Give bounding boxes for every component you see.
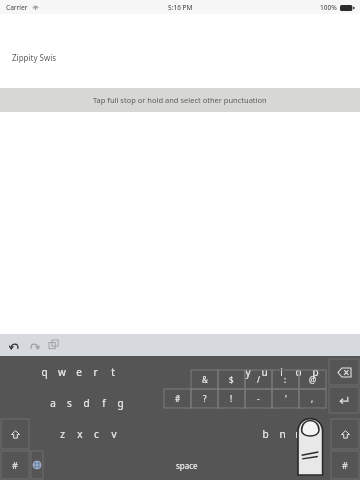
staticText: : [284,374,287,385]
button[interactable]: e [70,359,87,385]
button[interactable]: f [95,390,112,416]
staticText: c [94,427,99,441]
staticText: & [202,374,208,385]
button[interactable]: # [164,389,191,408]
staticText: u [261,365,268,379]
button[interactable]: space [45,451,329,479]
staticText: Carrier [6,3,28,12]
staticText: y [245,365,251,379]
staticText: $ [229,374,234,385]
button[interactable]: y [239,359,256,385]
button[interactable]: Symbols [1,451,29,479]
button[interactable]: b [257,421,274,447]
button[interactable]: w [53,359,70,385]
staticText: p [312,365,319,379]
button[interactable]: Change keyboard [31,451,43,479]
staticText: f [102,396,106,410]
staticText: t [111,365,115,379]
button[interactable]: a [44,390,61,416]
staticText: 5:16 PM [168,3,193,12]
button[interactable]: , [299,389,326,408]
button[interactable]: i [273,359,290,385]
button[interactable]: u [256,359,273,385]
staticText: b [262,427,269,441]
button[interactable]: n [274,421,291,447]
button[interactable]: v [105,421,122,447]
staticText: / [257,374,260,385]
button[interactable]: ! [218,389,245,408]
staticText: n [279,427,286,441]
staticText: ' [285,393,287,404]
button[interactable]: x [71,421,88,447]
button[interactable]: z [54,421,71,447]
staticText: d [83,396,90,410]
staticText: , [311,393,314,404]
button[interactable]: Redo [24,335,44,355]
button[interactable]: g [112,390,129,416]
staticText: space [176,460,198,471]
button[interactable]: ? [191,389,218,408]
button[interactable]: s [61,390,78,416]
staticText: ? [203,393,207,404]
staticText: 100% [320,3,337,12]
button[interactable]: m [291,421,308,447]
button[interactable]: Undo [4,335,24,355]
button[interactable]: : [272,370,299,389]
staticText: - [257,393,260,404]
button[interactable]: @ [299,370,326,389]
button[interactable]: o [290,359,307,385]
staticText: e [76,365,82,379]
staticText: @ [309,374,317,385]
button[interactable]: Shift [331,419,359,449]
button[interactable]: Shift [1,419,29,449]
button[interactable]: q [36,359,53,385]
staticText: m [295,427,305,441]
button[interactable]: ' [272,389,299,408]
staticText: # [12,459,18,471]
button[interactable]: Return [329,387,359,413]
button[interactable]: Copy [44,335,64,355]
staticText: g [117,396,124,410]
button[interactable]: - [245,389,272,408]
staticText: ! [230,393,233,404]
button[interactable]: c [88,421,105,447]
button[interactable]: Symbols [331,451,359,479]
staticText: # [342,459,348,471]
button[interactable]: Backspace [329,359,359,385]
staticText: v [111,427,117,441]
staticText: i [280,365,283,379]
staticText: Zippity Swis [12,52,57,63]
staticText: # [175,393,181,404]
staticText: o [295,365,302,379]
staticText: a [50,396,56,410]
staticText: w [58,365,66,379]
button[interactable]: d [78,390,95,416]
button[interactable]: t [104,359,121,385]
button[interactable]: / [245,370,272,389]
button[interactable]: $ [218,370,245,389]
staticText: r [93,365,98,379]
staticText: x [77,427,83,441]
button[interactable]: r [87,359,104,385]
button[interactable]: & [191,370,218,389]
staticText: s [67,396,72,410]
staticText: z [60,427,65,441]
button[interactable]: p [307,359,324,385]
staticText: q [41,365,48,379]
staticText: Tap full stop or hold and select other p… [93,95,267,105]
